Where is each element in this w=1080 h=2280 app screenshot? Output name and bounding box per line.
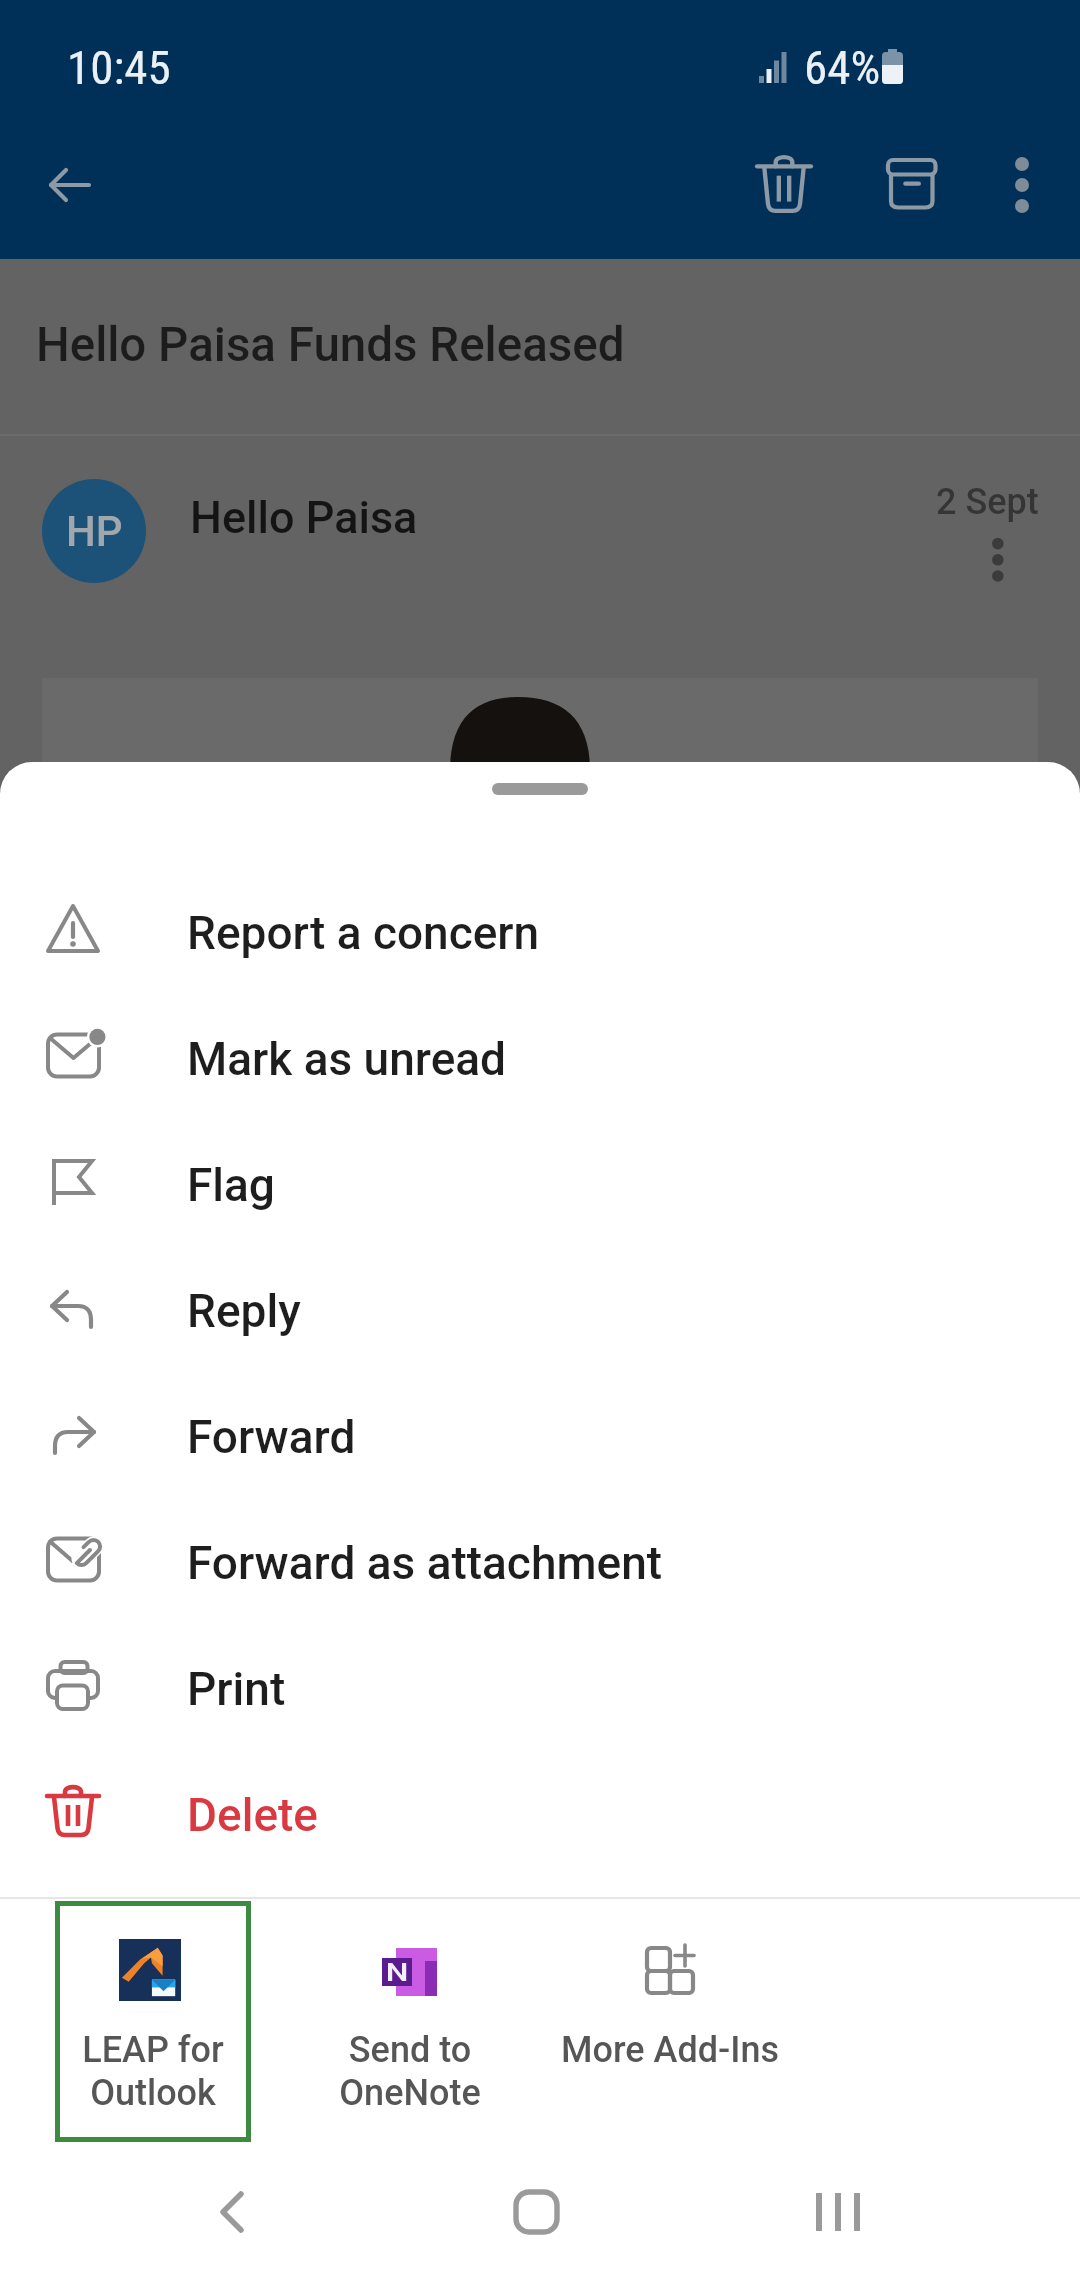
button[interactable]: More Add-Ins [556, 1901, 784, 2142]
button[interactable]: Forward [0, 1370, 1080, 1496]
button[interactable]: Archive [868, 141, 956, 229]
button[interactable]: Delete [740, 141, 828, 229]
staticText: Report a concern [187, 906, 540, 960]
button[interactable]: Delete [0, 1748, 1080, 1874]
button[interactable]: Print [0, 1622, 1080, 1748]
staticText: Mark as unread [187, 1032, 506, 1086]
staticText: Hello Paisa Funds Released [36, 317, 625, 373]
staticText: Print [187, 1662, 286, 1716]
staticText: More Add-Ins [556, 2029, 784, 2071]
button[interactable]: Back [182, 2162, 282, 2262]
button[interactable]: Mark as unread [0, 992, 1080, 1118]
staticText: Hello Paisa [190, 491, 418, 544]
button[interactable]: LEAP for Outlook [55, 1901, 251, 2142]
button[interactable]: Recent apps [788, 2162, 888, 2262]
button[interactable]: Home [486, 2162, 586, 2262]
staticText: Flag [187, 1158, 275, 1212]
staticText: LEAP for Outlook [55, 2029, 251, 2114]
staticText: Reply [187, 1284, 301, 1338]
button[interactable]: Send to OneNote [296, 1901, 524, 2142]
staticText: Forward as attachment [187, 1536, 663, 1590]
staticText: 10:45 [67, 40, 171, 95]
staticText: HP [66, 507, 123, 556]
button[interactable]: Back [26, 141, 114, 229]
staticText: Send to OneNote [296, 2029, 524, 2114]
button[interactable]: Forward as attachment [0, 1496, 1080, 1622]
button[interactable]: More options [978, 141, 1066, 229]
staticText: 64% [804, 40, 881, 95]
button[interactable]: Report a concern [0, 866, 1080, 992]
button[interactable]: Reply [0, 1244, 1080, 1370]
staticText: Delete [187, 1788, 318, 1842]
staticText: 2 Sept [936, 481, 1039, 523]
button[interactable]: Flag [0, 1118, 1080, 1244]
staticText: Forward [187, 1410, 356, 1464]
